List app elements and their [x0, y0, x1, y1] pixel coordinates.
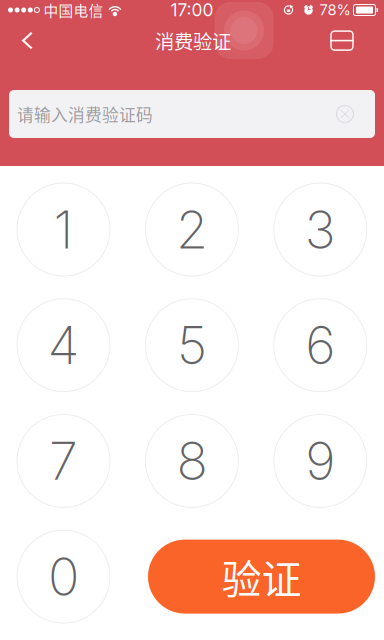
button[interactable]: 5	[145, 299, 238, 392]
button[interactable]: 3	[274, 183, 367, 276]
button[interactable]: Clear	[334, 103, 356, 125]
button[interactable]: Back	[5, 19, 49, 63]
staticText: 4	[47, 314, 79, 377]
staticText: 8	[176, 429, 207, 492]
button[interactable]: 1	[17, 183, 110, 276]
button[interactable]: Scan	[320, 19, 364, 63]
staticText: 验证	[221, 548, 301, 605]
button[interactable]: 9	[274, 414, 367, 507]
staticText: 5	[177, 314, 207, 377]
button[interactable]: 0	[17, 530, 110, 623]
staticText: 1	[53, 198, 73, 261]
button[interactable]: 4	[17, 299, 110, 392]
staticText: 7	[49, 429, 78, 492]
staticText: 0	[48, 545, 79, 608]
button[interactable]: 验证	[148, 540, 375, 614]
staticText: 中国电信	[43, 0, 103, 21]
staticText: 2	[176, 198, 208, 261]
staticText: 消费验证	[155, 26, 231, 54]
staticText: 请输入消费验证码	[17, 102, 153, 126]
button[interactable]: 2	[145, 183, 238, 276]
button[interactable]: 8	[145, 414, 238, 507]
staticText: 6	[305, 314, 335, 377]
staticText: 17:00	[170, 0, 213, 20]
staticText: 78%	[319, 1, 350, 19]
button[interactable]: 6	[274, 299, 367, 392]
button[interactable]: 7	[17, 414, 110, 507]
staticText: 3	[305, 198, 336, 261]
staticText: 9	[305, 429, 335, 492]
